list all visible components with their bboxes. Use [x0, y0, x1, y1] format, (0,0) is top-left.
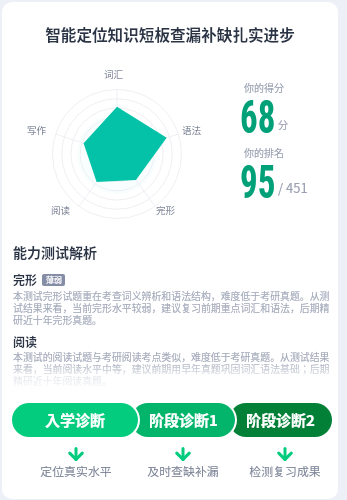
staticText: 完形 [13, 271, 38, 288]
staticText: 智能定位知识短板查漏补缺扎实进步 [2, 23, 338, 46]
staticText: 检测复习成果 [249, 462, 321, 479]
staticText: 写作 [27, 123, 47, 137]
staticText: 及时查缺补漏 [147, 462, 219, 479]
staticText: 阶段诊断1 [149, 409, 218, 431]
staticText: 薄弱 [46, 274, 62, 286]
staticText: 阅读 [13, 333, 38, 350]
staticText: 阅读 [51, 203, 71, 217]
button[interactable]: 阶段诊断1 [131, 403, 235, 437]
staticText: / 451 [278, 178, 308, 197]
staticText: 能力测试解析 [13, 242, 97, 262]
staticText: 本测试的阅读试题与考研阅读考点类似，难度低于考研真题。从测试结果来看，当前阅读水… [13, 350, 333, 388]
staticText: 你的排名 [244, 145, 284, 159]
staticText: 语法 [182, 123, 202, 137]
staticText: 阶段诊断2 [246, 409, 315, 431]
staticText: 分 [278, 117, 288, 131]
button[interactable]: 阶段诊断2 [229, 403, 332, 437]
staticText: 词汇 [104, 67, 124, 81]
staticText: 你的得分 [244, 80, 284, 94]
staticText: 68 [240, 90, 276, 144]
staticText: 本测试完形试题重在考查词义辨析和语法结构，难度低于考研真题。从测试结果来看，当前… [13, 289, 333, 327]
button[interactable]: 入学诊断 [12, 403, 138, 437]
staticText: 完形 [156, 203, 176, 217]
staticText: 定位真实水平 [40, 462, 112, 479]
staticText: 95 [240, 155, 276, 209]
staticText: 入学诊断 [45, 409, 106, 431]
